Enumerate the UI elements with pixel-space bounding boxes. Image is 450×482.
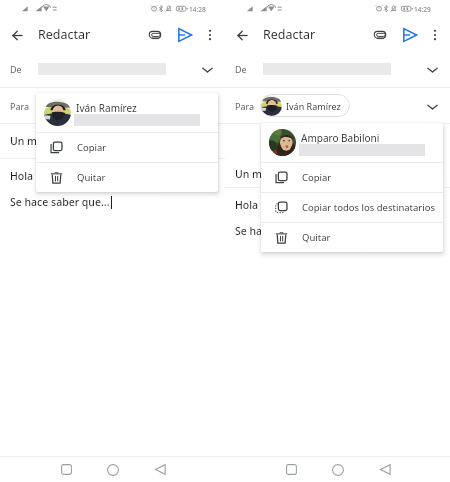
staticText: Quitar — [77, 171, 106, 184]
button[interactable]: Attach file — [368, 23, 392, 47]
button[interactable]: Copiar todos los destinatarios — [261, 193, 443, 222]
button[interactable]: More options — [199, 24, 221, 46]
staticText: De — [235, 63, 247, 75]
button[interactable]: De — [225, 51, 450, 87]
button[interactable]: Send — [398, 23, 422, 47]
staticText: De — [10, 63, 22, 75]
staticText: Copiar todos los destinatarios — [302, 201, 436, 214]
button[interactable]: Para — [0, 88, 225, 123]
staticText: 14:28 — [189, 5, 206, 14]
staticText: Copiar — [302, 171, 332, 184]
staticText: Iván Ramírez — [286, 100, 341, 112]
button[interactable]: Quitar — [261, 223, 443, 252]
staticText: Quitar — [302, 231, 331, 244]
staticText: Copiar — [77, 141, 107, 154]
button[interactable]: De — [0, 51, 225, 87]
button[interactable]: Attach file — [143, 23, 167, 47]
button[interactable]: Recent apps — [275, 457, 307, 482]
staticText: Hola — [235, 198, 259, 212]
staticText: Se hace saber que... — [10, 195, 110, 209]
button[interactable]: Para — [225, 88, 450, 123]
staticText: Iván Ramírez — [76, 101, 137, 115]
staticText: Un me — [235, 167, 269, 181]
button[interactable]: Copiar — [36, 133, 218, 162]
staticText: Un me — [10, 134, 44, 148]
staticText: Se ha — [235, 224, 263, 238]
button[interactable]: Back — [369, 457, 401, 482]
button[interactable]: Iván Ramírez — [36, 93, 218, 132]
button[interactable]: Back — [144, 457, 176, 482]
staticText: Hola — [10, 169, 34, 183]
staticText: Para — [10, 100, 30, 112]
button[interactable]: More options — [424, 24, 446, 46]
button[interactable]: Home — [322, 457, 354, 482]
staticText: 14:29 — [414, 5, 431, 14]
button[interactable]: Quitar — [36, 163, 218, 192]
staticText: Redactar — [263, 26, 316, 43]
staticText: Amparo Babiloni — [301, 131, 380, 145]
button[interactable]: Amparo Babiloni — [261, 123, 443, 162]
button[interactable]: Home — [97, 457, 129, 482]
staticText: Redactar — [38, 26, 91, 43]
button[interactable]: Recent apps — [50, 457, 82, 482]
button[interactable]: Back — [5, 23, 29, 47]
staticText: Para — [235, 100, 255, 112]
button[interactable]: Copiar — [261, 163, 443, 192]
button[interactable]: Send — [173, 23, 197, 47]
button[interactable]: Back — [230, 23, 254, 47]
